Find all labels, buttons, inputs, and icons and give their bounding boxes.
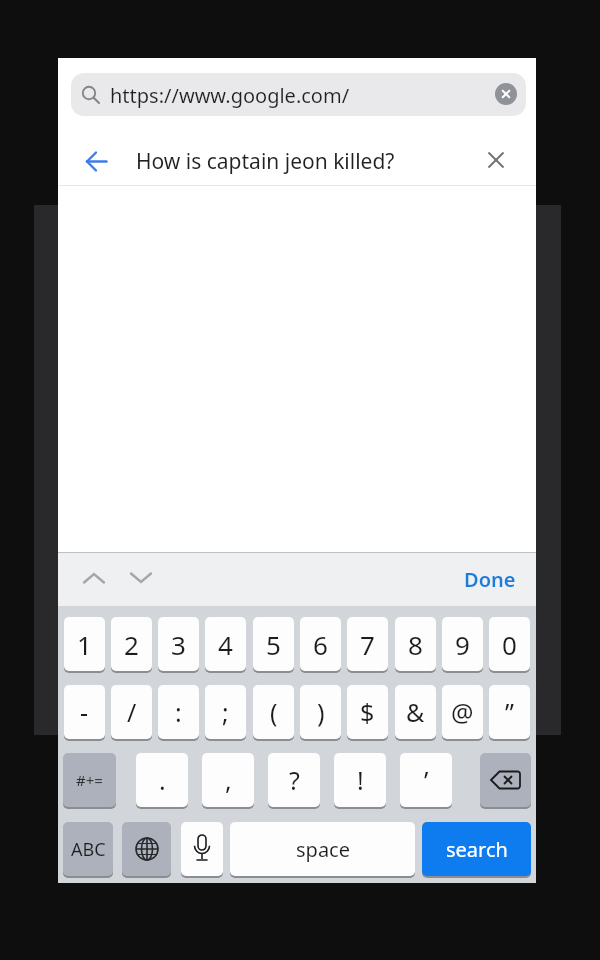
button[interactable] (482, 146, 510, 174)
staticText: ( (270, 695, 278, 729)
button[interactable]: / (111, 685, 152, 739)
button[interactable]: ? (268, 753, 320, 807)
button[interactable]: ; (205, 685, 246, 739)
button[interactable] (495, 83, 517, 105)
button[interactable] (122, 822, 171, 876)
button[interactable]: - (64, 685, 105, 739)
staticText: 9 (455, 627, 470, 662)
button[interactable]: ” (489, 685, 530, 739)
button[interactable]: ’ (400, 753, 452, 807)
staticText: ’ (424, 763, 429, 797)
button[interactable]: ABC (63, 822, 113, 876)
staticText: @ (451, 695, 474, 729)
staticText: 7 (360, 627, 375, 662)
staticText: ; (222, 695, 229, 729)
staticText: 0 (502, 627, 517, 662)
button[interactable]: 1 (64, 617, 105, 671)
button[interactable]: & (395, 685, 436, 739)
button[interactable]: $ (347, 685, 388, 739)
staticText: $ (360, 695, 375, 729)
staticText: . (159, 763, 166, 797)
button[interactable]: space (230, 822, 415, 876)
button[interactable]: 4 (205, 617, 246, 671)
staticText: 6 (313, 627, 328, 662)
button[interactable] (76, 142, 116, 180)
button[interactable]: @ (442, 685, 483, 739)
button[interactable]: 2 (111, 617, 152, 671)
staticText: #+= (76, 770, 103, 790)
button[interactable]: #+= (63, 753, 116, 807)
button[interactable]: : (158, 685, 199, 739)
staticText: 5 (266, 627, 281, 662)
staticText: - (80, 695, 89, 729)
button[interactable]: 7 (347, 617, 388, 671)
staticText: 4 (218, 627, 233, 662)
button[interactable]: ! (334, 753, 386, 807)
button[interactable]: ) (300, 685, 341, 739)
button[interactable]: , (202, 753, 254, 807)
staticText: : (175, 695, 182, 729)
staticText: & (406, 695, 425, 729)
button[interactable]: 8 (395, 617, 436, 671)
staticText: ) (317, 695, 325, 729)
button[interactable] (80, 565, 108, 591)
button[interactable]: 5 (253, 617, 294, 671)
button[interactable]: ( (253, 685, 294, 739)
button[interactable] (71, 73, 526, 116)
staticText: search (446, 836, 508, 863)
button[interactable]: 0 (489, 617, 530, 671)
staticText: How is captain jeon killed? (136, 147, 395, 176)
button[interactable]: 6 (300, 617, 341, 671)
staticText: 1 (77, 627, 92, 662)
button[interactable] (181, 822, 223, 876)
button[interactable]: 9 (442, 617, 483, 671)
staticText: ? (289, 763, 300, 797)
button[interactable] (127, 565, 155, 591)
staticText: ABC (71, 837, 106, 862)
button[interactable]: 3 (158, 617, 199, 671)
button[interactable]: . (136, 753, 188, 807)
staticText: https://www.google.com/ (110, 82, 350, 109)
staticText: ! (357, 763, 364, 797)
staticText: 2 (124, 627, 139, 662)
staticText: 3 (171, 627, 186, 662)
staticText: ” (505, 695, 514, 729)
button[interactable]: Done (455, 560, 525, 598)
button[interactable]: search (422, 822, 531, 876)
staticText: Done (464, 566, 516, 593)
button[interactable] (480, 753, 531, 807)
staticText: space (296, 836, 350, 863)
staticText: , (225, 763, 232, 797)
staticText: 8 (408, 627, 423, 662)
staticText: / (127, 695, 137, 729)
